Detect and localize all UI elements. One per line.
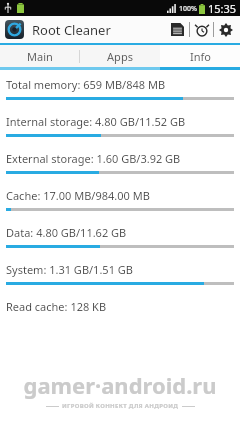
staticText: System: 1.31 GB/1.51 GB bbox=[6, 262, 133, 277]
button[interactable]: Main bbox=[0, 45, 80, 67]
staticText: Internal storage: 4.80 GB/11.52 GB bbox=[6, 114, 186, 129]
staticText: Total memory: 659 MB/848 MB bbox=[6, 77, 166, 92]
staticText: Info bbox=[190, 49, 211, 64]
staticText: Data: 4.80 GB/11.62 GB bbox=[6, 225, 127, 240]
button[interactable]: Apps bbox=[80, 45, 160, 67]
staticText: ИГРОВОЙ КОННЕКТ ДЛЯ АНДРОИД bbox=[62, 402, 179, 410]
staticText: External storage: 1.60 GB/3.92 GB bbox=[6, 151, 181, 166]
button[interactable]: Logs bbox=[166, 18, 189, 41]
staticText: Apps bbox=[107, 49, 133, 64]
staticText: 15:35 bbox=[208, 1, 237, 16]
button[interactable]: Scheduler bbox=[190, 18, 213, 41]
staticText: Root Cleaner bbox=[32, 21, 111, 39]
staticText: Main bbox=[27, 49, 53, 64]
button[interactable]: Data: 4.80 GB/11.62 GB bbox=[0, 225, 240, 262]
button[interactable]: Root Cleaner icon bbox=[5, 20, 24, 39]
staticText: Read cache: 128 KB bbox=[6, 299, 107, 314]
button[interactable]: Settings bbox=[214, 18, 237, 41]
staticText: gamer·android.ru bbox=[23, 370, 217, 400]
staticText: Cache: 17.00 MB/984.00 MB bbox=[6, 188, 150, 203]
button[interactable]: Info bbox=[160, 45, 240, 67]
button[interactable]: Cache: 17.00 MB/984.00 MB bbox=[0, 188, 240, 225]
button[interactable]: External storage: 1.60 GB/3.92 GB bbox=[0, 151, 240, 188]
button[interactable]: Internal storage: 4.80 GB/11.52 GB bbox=[0, 114, 240, 151]
button[interactable]: Total memory: 659 MB/848 MB bbox=[0, 77, 240, 114]
button[interactable]: Read cache: 128 KB bbox=[0, 299, 240, 333]
staticText: 100% bbox=[179, 4, 197, 14]
button[interactable]: System: 1.31 GB/1.51 GB bbox=[0, 262, 240, 299]
